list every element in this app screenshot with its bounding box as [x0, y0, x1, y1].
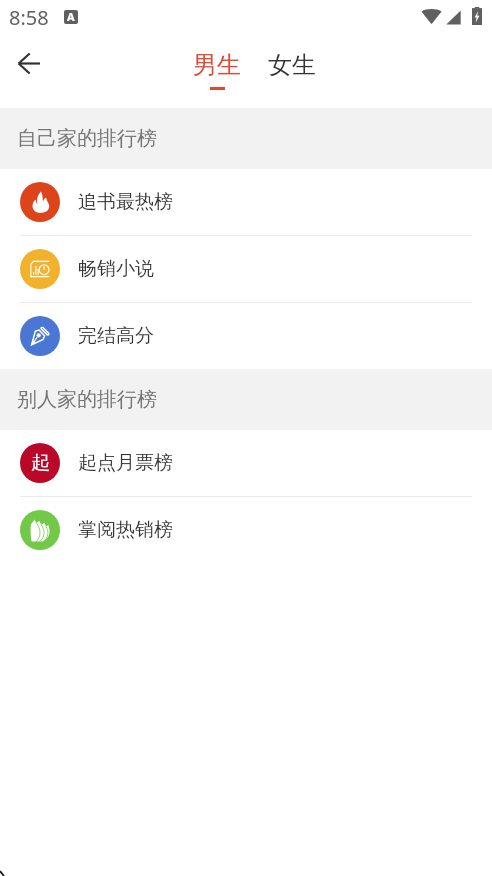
staticText: 起点月票榜 — [78, 451, 173, 475]
staticText: 起 — [31, 451, 50, 475]
button[interactable]: 男生 — [182, 47, 252, 93]
staticText: 男生 — [193, 50, 241, 80]
staticText: 女生 — [268, 50, 316, 80]
button[interactable]: 追书最热榜 — [0, 169, 492, 235]
staticText: 完结高分 — [78, 324, 154, 348]
staticText: 畅销小说 — [78, 257, 154, 281]
staticText: A — [67, 10, 75, 23]
button[interactable]: 完结高分 — [0, 303, 492, 369]
button[interactable]: Back — [5, 39, 53, 87]
staticText: 8:58 — [9, 4, 49, 31]
staticText: 自己家的排行榜 — [17, 126, 157, 151]
staticText: 追书最热榜 — [78, 190, 173, 214]
staticText: 别人家的排行榜 — [17, 387, 157, 412]
button[interactable]: 掌阅热销榜 — [0, 497, 492, 563]
button[interactable]: 起 — [0, 430, 492, 496]
button[interactable]: 女生 — [257, 47, 327, 93]
staticText: 掌阅热销榜 — [78, 518, 173, 542]
button[interactable]: 畅销小说 — [0, 236, 492, 302]
